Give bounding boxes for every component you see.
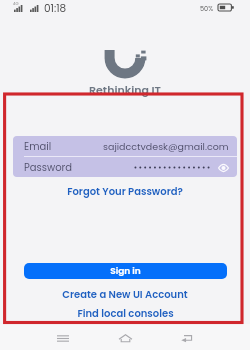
staticText: 4G [13, 1, 19, 7]
staticText: 50% [200, 4, 214, 13]
button[interactable]: Recent apps [48, 328, 78, 348]
button[interactable]: Create a New UI Account [0, 287, 250, 301]
button[interactable]: Back [172, 328, 202, 348]
staticText: sajidcctvdesk@gmail.com [103, 140, 229, 153]
staticText: Email [24, 139, 52, 153]
staticText: 01:18 [44, 1, 67, 16]
staticText: Find local consoles [77, 306, 174, 320]
button[interactable]: Home [110, 328, 140, 348]
staticText: Sign in [110, 265, 141, 278]
button[interactable]: Sign in [24, 263, 227, 279]
button[interactable]: Find local consoles [0, 306, 250, 320]
button[interactable]: Forgot Your Password? [0, 184, 250, 198]
button[interactable]: Password [13, 157, 237, 177]
staticText: Create a New UI Account [62, 287, 188, 301]
staticText: Forgot Your Password? [67, 184, 183, 198]
button[interactable]: Email [13, 136, 237, 156]
staticText: Password [24, 160, 73, 174]
button[interactable]: Show password [217, 162, 229, 173]
staticText: Rethinking IT [89, 82, 161, 97]
